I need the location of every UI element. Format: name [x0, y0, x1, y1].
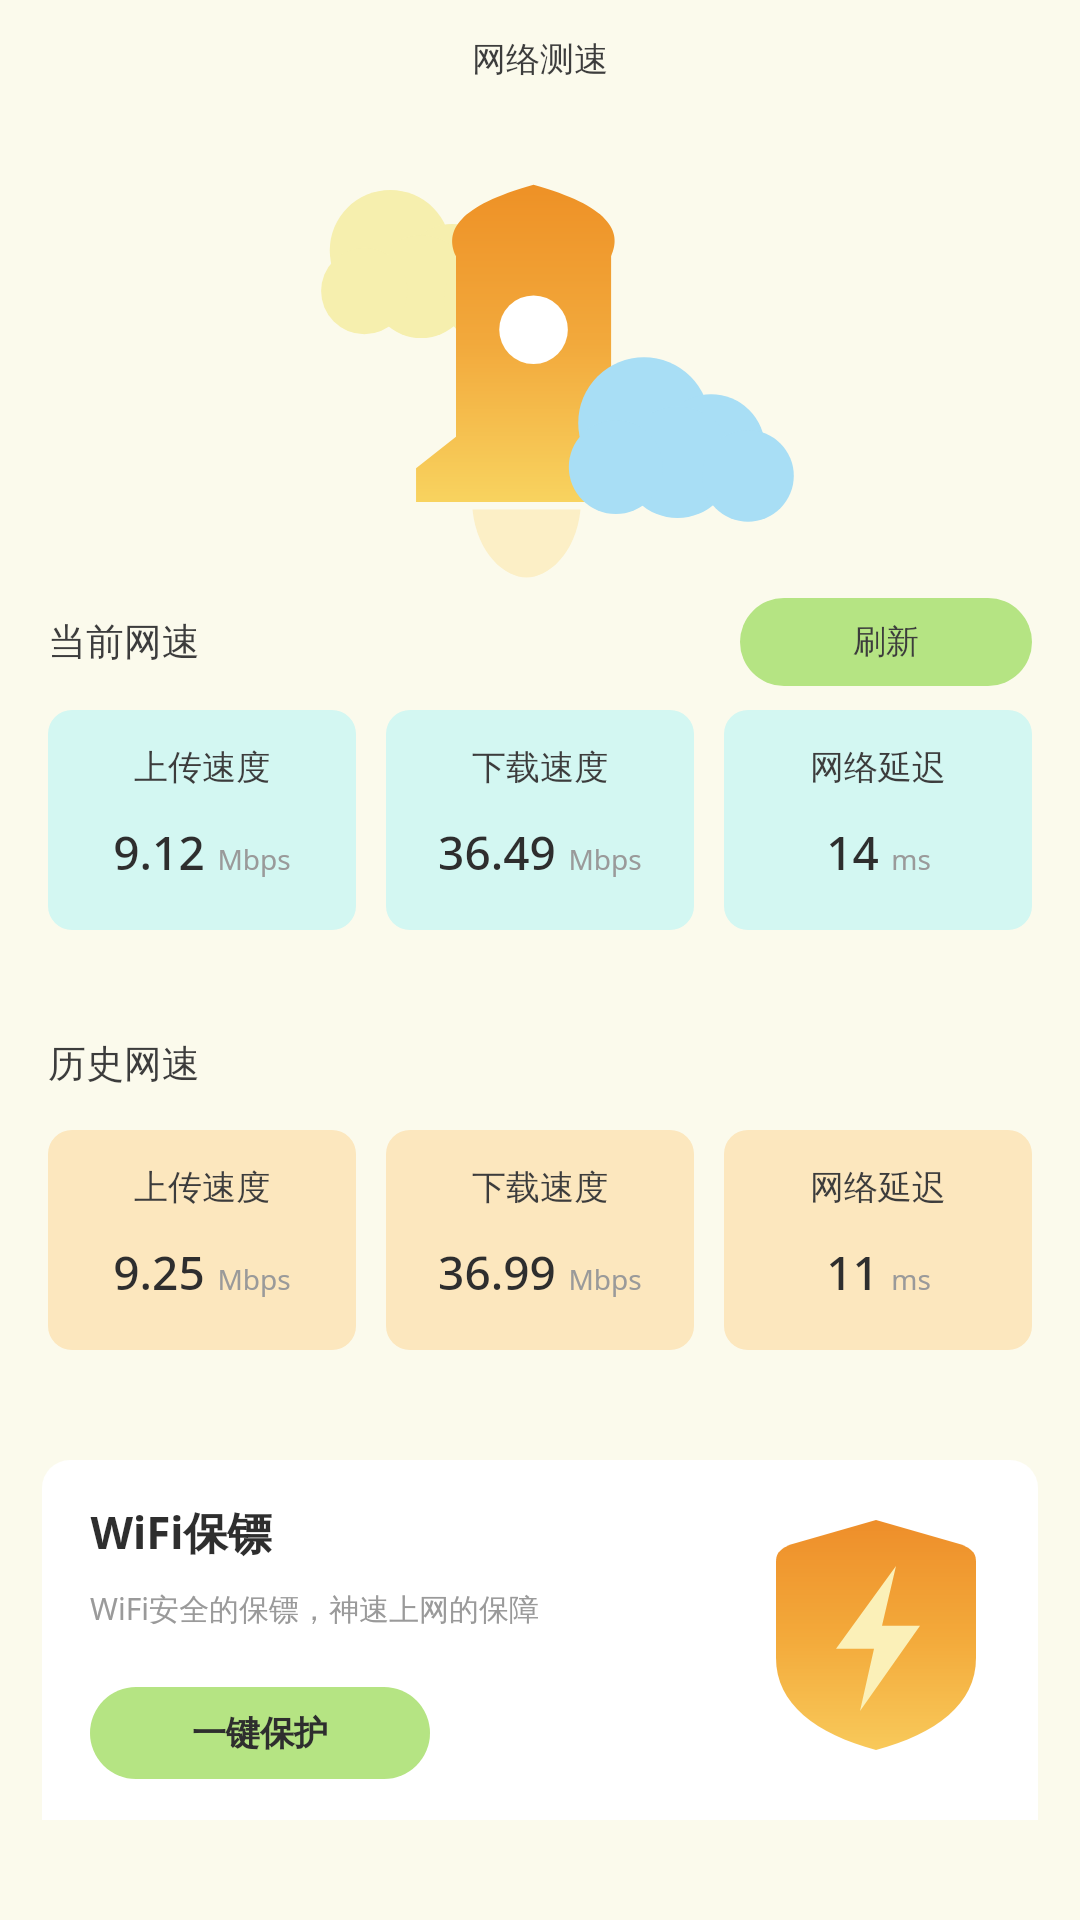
staticText: 36.49	[438, 821, 556, 884]
staticText: WiFi保镖	[90, 1502, 272, 1562]
button[interactable]: 上传速度	[48, 710, 356, 930]
staticText: Mbps	[217, 1260, 291, 1298]
other: WiFi 保镖	[776, 1520, 976, 1750]
button[interactable]: 网络延迟	[724, 710, 1032, 930]
staticText: 下载速度	[472, 1166, 608, 1209]
staticText: ms	[891, 840, 931, 878]
button[interactable]: 刷新	[740, 598, 1032, 686]
staticText: 9.12	[113, 821, 205, 884]
staticText: 14	[826, 821, 879, 884]
staticText: ms	[891, 1260, 931, 1298]
staticText: 一键保护	[192, 1712, 328, 1755]
staticText: 网络延迟	[810, 746, 946, 789]
button[interactable]: 一键保护	[90, 1687, 430, 1779]
staticText: 36.99	[438, 1241, 556, 1304]
staticText: Mbps	[217, 840, 291, 878]
staticText: 11	[826, 1241, 879, 1304]
button[interactable]: 上传速度	[48, 1130, 356, 1350]
staticText: WiFi安全的保镖，神速上网的保障	[90, 1588, 539, 1629]
staticText: 当前网速	[48, 618, 200, 666]
button[interactable]: 下载速度	[386, 1130, 694, 1350]
staticText: 历史网速	[48, 1040, 200, 1088]
button[interactable]: WiFi保镖	[42, 1460, 1038, 1820]
staticText: 下载速度	[472, 746, 608, 789]
staticText: Mbps	[568, 1260, 642, 1298]
staticText: Mbps	[568, 840, 642, 878]
button[interactable]: 下载速度	[386, 710, 694, 930]
staticText: 上传速度	[134, 746, 270, 789]
staticText: 刷新	[853, 621, 919, 663]
button[interactable]: 网络延迟	[724, 1130, 1032, 1350]
staticText: 网络延迟	[810, 1166, 946, 1209]
staticText: 网络测速	[472, 38, 608, 81]
staticText: 上传速度	[134, 1166, 270, 1209]
staticText: 9.25	[113, 1241, 205, 1304]
